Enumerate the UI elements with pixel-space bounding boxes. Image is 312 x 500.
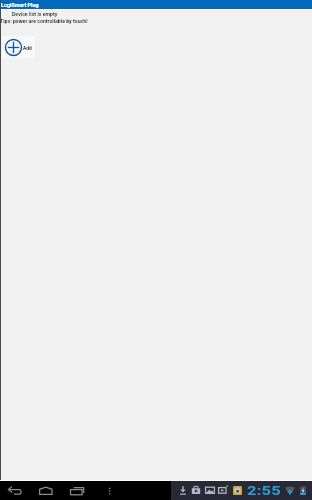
button[interactable]: Back xyxy=(6,481,24,500)
staticText: Device list is empty xyxy=(12,11,58,17)
button[interactable]: Update available xyxy=(233,486,242,495)
button[interactable]: More options xyxy=(103,481,117,500)
button[interactable]: Battery xyxy=(300,486,306,495)
staticText: Tips: power are controllable by touch! xyxy=(0,18,88,24)
button[interactable]: LogiSmart Plug xyxy=(0,0,312,9)
button[interactable]: Recent apps xyxy=(69,481,87,500)
staticText: 2:55 xyxy=(247,484,282,498)
staticText: Add xyxy=(23,45,32,51)
button[interactable]: Add xyxy=(2,36,35,58)
staticText: LogiSmart Plug xyxy=(1,2,39,8)
button[interactable]: Wi-Fi xyxy=(285,487,295,495)
button[interactable]: Home xyxy=(38,481,56,500)
